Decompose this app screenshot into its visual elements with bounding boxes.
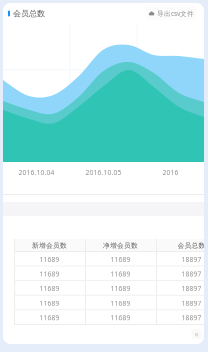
staticText: 2016.10.05 — [85, 168, 121, 177]
staticText: « — [194, 329, 198, 339]
staticText: 11689 — [39, 255, 59, 264]
staticText: 18897 — [181, 255, 201, 264]
staticText: 11689 — [39, 269, 59, 278]
staticText: 2016 — [162, 168, 178, 177]
button[interactable]: 导出csv文件 — [146, 7, 197, 20]
staticText: 会员总数 — [13, 9, 45, 18]
staticText: 18897 — [181, 284, 201, 293]
staticText: 11689 — [39, 313, 59, 322]
staticText: 11689 — [110, 313, 130, 322]
staticText: 11689 — [110, 284, 130, 293]
staticText: 会员总数 — [177, 241, 205, 250]
staticText: 11689 — [110, 255, 130, 264]
staticText: 2016.10.04 — [18, 168, 54, 177]
staticText: 净增会员数 — [103, 241, 138, 250]
staticText: 11689 — [110, 269, 130, 278]
staticText: 11689 — [39, 299, 59, 308]
button[interactable]: « — [191, 329, 201, 339]
staticText: 11689 — [110, 299, 130, 308]
staticText: 18897 — [181, 269, 201, 278]
staticText: 18897 — [181, 299, 201, 308]
staticText: 11689 — [39, 284, 59, 293]
staticText: 导出csv文件 — [157, 9, 194, 18]
staticText: 新增会员数 — [32, 241, 67, 250]
staticText: 18897 — [181, 313, 201, 322]
